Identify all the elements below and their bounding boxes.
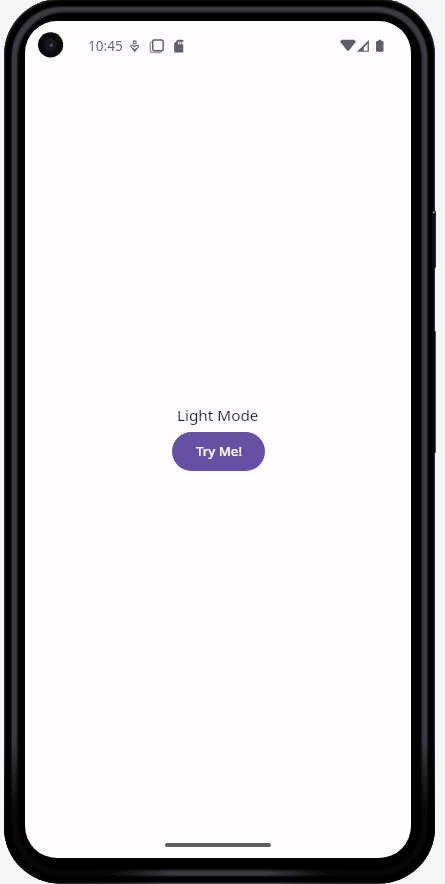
staticText: Try Me!	[196, 442, 242, 460]
other: Home gesture handle	[165, 843, 271, 847]
staticText: 10:45	[88, 36, 123, 55]
button[interactable]: Try Me!	[172, 432, 265, 471]
staticText: Light Mode	[177, 405, 259, 426]
